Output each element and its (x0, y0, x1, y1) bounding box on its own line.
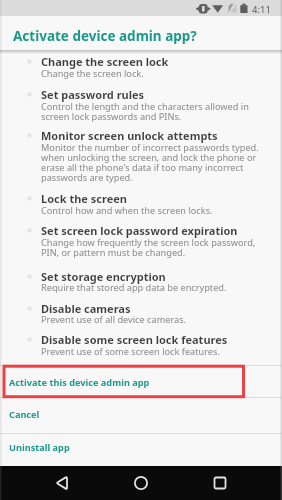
staticText: 4:11 (252, 3, 271, 16)
staticText: Set storage encryption (41, 269, 166, 284)
staticText: Change how frequently the screen lock pa… (41, 236, 256, 249)
button[interactable] (188, 466, 282, 500)
button[interactable]: Uninstall app (0, 434, 282, 466)
staticText: erase all the phone's data if too many i… (41, 161, 244, 174)
button[interactable] (0, 466, 94, 500)
staticText: Lock the screen (41, 191, 127, 206)
button[interactable] (94, 466, 188, 500)
staticText: Change the screen lock. (41, 67, 144, 80)
staticText: Disable some screen lock features (41, 332, 228, 347)
staticText: Require that stored app data be encrypte… (41, 281, 227, 294)
staticText: Prevent use of some screen lock features… (41, 345, 220, 358)
staticText: Cancel (9, 408, 40, 421)
staticText: Control how and when the screen locks. (41, 204, 213, 217)
staticText: Change the screen lock (41, 54, 169, 69)
staticText: Set password rules (41, 87, 145, 102)
staticText: Uninstall app (9, 441, 70, 454)
staticText: Control the length and the characters al… (41, 100, 249, 113)
staticText: Monitor screen unlock attempts (41, 128, 218, 143)
staticText: Prevent use of all device cameras. (41, 313, 187, 326)
staticText: Activate this device admin app (9, 376, 150, 389)
button[interactable]: Cancel (0, 398, 282, 433)
staticText: screen lock passwords and PINs. (41, 110, 182, 123)
staticText: Set screen lock password expiration (41, 223, 238, 238)
button[interactable]: Activate this device admin app (0, 365, 282, 397)
staticText: Monitor the number of incorrect password… (41, 141, 259, 154)
staticText: when unlocking the screen, and lock the … (41, 151, 257, 164)
staticText: PIN, or pattern must be changed. (41, 246, 186, 259)
staticText: Activate device admin app? (13, 27, 197, 45)
staticText: passwords are typed. (41, 171, 133, 184)
staticText: Disable cameras (41, 301, 131, 316)
